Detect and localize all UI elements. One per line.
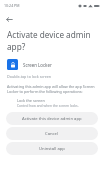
button[interactable]: Activate this device admin app xyxy=(6,112,98,125)
staticText: Activate this device admin app xyxy=(22,116,82,122)
staticText: Lock the screen xyxy=(17,98,45,103)
staticText: Uninstall app xyxy=(39,146,65,152)
staticText: Activating this admin app will allow the… xyxy=(7,84,95,89)
button[interactable]: Uninstall app xyxy=(6,142,98,155)
staticText: app? xyxy=(7,41,26,52)
staticText: Cancel xyxy=(45,131,59,137)
staticText: Double-tap to lock screen xyxy=(7,74,52,79)
button[interactable]: Cancel xyxy=(6,127,98,140)
button[interactable]: Back xyxy=(3,13,16,26)
staticText: Control how and when the screen locks. xyxy=(17,103,79,107)
staticText: 10:24 PM xyxy=(4,3,20,8)
staticText: Locker to perform the following operatio… xyxy=(7,89,83,94)
staticText: Screen Locker xyxy=(23,62,52,68)
staticText: Activate device admin xyxy=(7,29,91,40)
